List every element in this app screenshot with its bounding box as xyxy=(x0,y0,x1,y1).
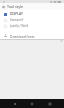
staticText: Tool style xyxy=(7,4,24,9)
button[interactable]: Back xyxy=(12,101,18,107)
button[interactable]: Back xyxy=(0,3,7,10)
button[interactable]: Download fonts xyxy=(0,32,64,39)
staticText: Justify / Bold xyxy=(10,24,29,28)
staticText: Download fonts xyxy=(10,34,35,38)
staticText: Sansserif xyxy=(10,18,24,22)
button[interactable]: Home xyxy=(29,101,35,107)
button[interactable]: Sansserif xyxy=(0,17,64,23)
staticText: DISPLAY xyxy=(10,12,23,16)
button[interactable]: Justify / Bold xyxy=(0,23,64,29)
button[interactable]: Recent apps xyxy=(47,101,53,107)
button[interactable]: DISPLAY xyxy=(0,11,64,17)
